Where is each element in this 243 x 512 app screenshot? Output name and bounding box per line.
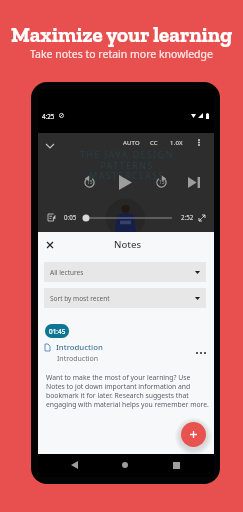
button[interactable]: Next video bbox=[188, 177, 200, 188]
button[interactable]: Back bbox=[64, 455, 84, 475]
button[interactable]: AUTO bbox=[123, 139, 140, 147]
staticText: MASTERCLASS bbox=[89, 170, 165, 182]
button[interactable]: Replay 15 seconds bbox=[84, 177, 95, 188]
button[interactable]: Add note at this time bbox=[46, 212, 57, 223]
staticText: 1.0X bbox=[170, 139, 183, 147]
button[interactable]: Recent apps bbox=[166, 455, 186, 475]
staticText: Take notes to retain more knowledge bbox=[30, 47, 213, 61]
button[interactable]: 1.0X bbox=[170, 139, 183, 147]
button[interactable]: Note options bbox=[191, 344, 211, 362]
staticText: Introduction bbox=[57, 354, 99, 364]
button[interactable]: More options bbox=[194, 136, 204, 148]
staticText: AUTO bbox=[123, 139, 140, 147]
button[interactable]: Sort by most recent bbox=[44, 288, 206, 308]
button[interactable]: Introduction bbox=[56, 342, 103, 353]
staticText: 01:45 bbox=[49, 327, 66, 336]
button[interactable]: All lectures bbox=[44, 262, 206, 282]
staticText: Notes bbox=[114, 238, 142, 251]
button[interactable]: 01:45 bbox=[45, 324, 69, 338]
staticText: Introduction bbox=[56, 342, 103, 353]
button[interactable]: Home bbox=[115, 455, 135, 475]
staticText: Maximize your learning bbox=[11, 22, 233, 47]
staticText: CC bbox=[150, 139, 158, 147]
button[interactable]: Fullscreen bbox=[196, 212, 207, 223]
staticText: All lectures bbox=[50, 268, 84, 277]
staticText: 0:05 bbox=[64, 213, 77, 221]
button[interactable]: Collapse bbox=[42, 140, 57, 152]
button[interactable]: Play bbox=[119, 175, 132, 190]
staticText: 15 bbox=[87, 179, 93, 186]
button[interactable]: Close bbox=[41, 236, 58, 253]
staticText: 15 bbox=[159, 179, 165, 186]
button[interactable]: Forward 15 seconds bbox=[156, 177, 167, 188]
staticText: PATTERNS bbox=[100, 160, 154, 172]
button[interactable]: CC bbox=[150, 139, 158, 147]
staticText: Sort by most recent bbox=[50, 294, 110, 303]
button[interactable]: Add note bbox=[181, 422, 206, 447]
staticText: 4:25 bbox=[42, 112, 55, 120]
staticText: THE JAVA DESIGN bbox=[80, 149, 174, 161]
staticText: Want to make the most of your learning? … bbox=[46, 373, 210, 409]
staticText: 2:52 bbox=[181, 213, 194, 221]
